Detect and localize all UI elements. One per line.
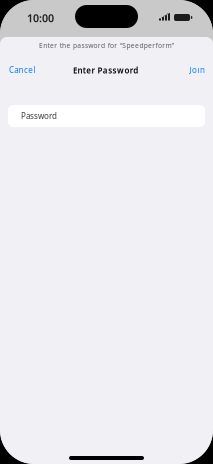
staticText: 10:00 (27, 11, 54, 25)
staticText: Enter the password for “Speedperform” (39, 41, 174, 50)
staticText: Password (21, 111, 57, 121)
staticText: Enter Password (73, 65, 138, 76)
button[interactable]: Join (180, 59, 205, 81)
staticText: Cancel (9, 65, 35, 75)
staticText: Join (189, 65, 205, 75)
button[interactable]: Cancel (9, 59, 45, 81)
button[interactable]: Password (8, 105, 205, 127)
